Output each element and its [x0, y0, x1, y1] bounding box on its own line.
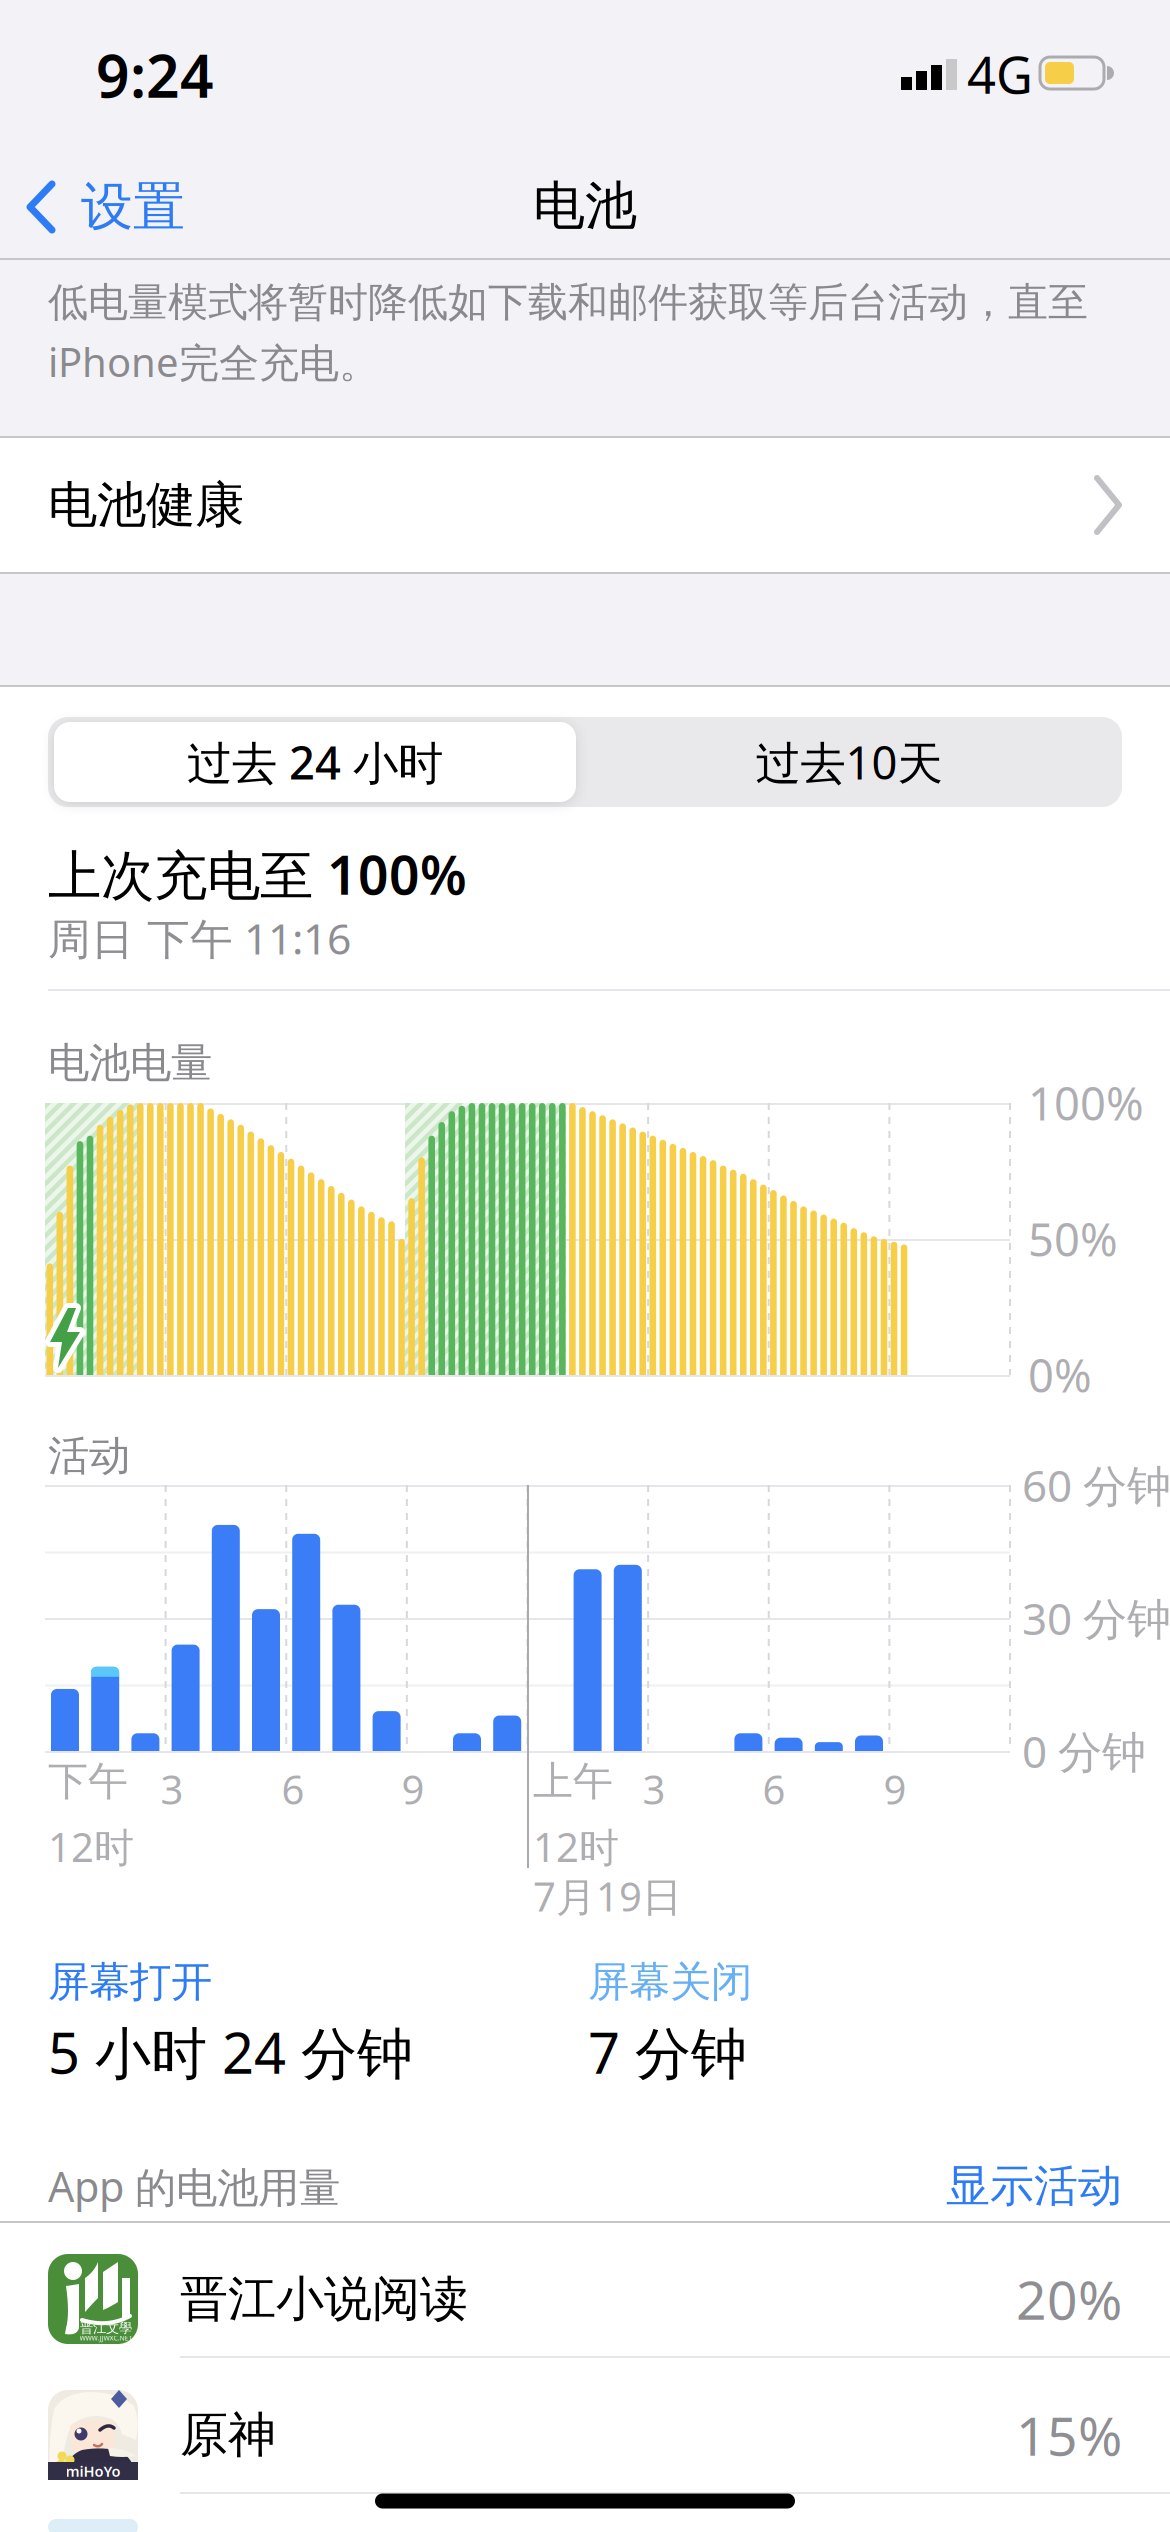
staticText: App 的电池用量: [48, 2158, 340, 2213]
button[interactable]: 晋江文學: [0, 2254, 1170, 2344]
staticText: 周日 下午 11:16: [48, 910, 351, 966]
button[interactable]: 显示活动: [822, 2159, 1122, 2213]
button[interactable]: miHoYo: [0, 2390, 1170, 2480]
staticText: 3: [642, 1762, 665, 1815]
staticText: 15%: [1016, 2400, 1122, 2470]
staticText: 12时: [48, 1820, 134, 1873]
staticText: 显示活动: [946, 2159, 1122, 2213]
staticText: 20%: [1016, 2264, 1122, 2334]
staticText: 过去10天: [755, 732, 942, 792]
staticText: iPhone完全充电。: [48, 335, 379, 388]
staticText: 100%: [1028, 1073, 1144, 1133]
button[interactable]: 过去 24 小时: [54, 722, 576, 802]
staticText: WWW.JJWXC.NET: [79, 2334, 132, 2342]
staticText: 12时: [533, 1820, 619, 1873]
button[interactable]: 电池健康: [0, 438, 1170, 572]
staticText: 屏幕关闭: [588, 1957, 752, 2007]
staticText: 电池健康: [48, 475, 244, 535]
staticText: 电池: [533, 174, 637, 238]
staticText: 7 分钟: [588, 2015, 747, 2089]
staticText: 上午: [533, 1757, 613, 1806]
staticText: 电池电量: [48, 1038, 212, 1088]
staticText: 0%: [1028, 1345, 1092, 1405]
staticText: 6: [762, 1762, 785, 1815]
staticText: 晋江小说阅读: [180, 2269, 468, 2328]
staticText: 9: [401, 1762, 424, 1815]
staticText: 3: [160, 1762, 183, 1815]
staticText: 4G: [967, 40, 1033, 108]
staticText: 晋江文學: [80, 2320, 132, 2336]
staticText: 活动: [48, 1431, 130, 1481]
staticText: 6: [281, 1762, 304, 1815]
staticText: 原神: [180, 2405, 276, 2464]
staticText: 上次充电至 100%: [48, 839, 467, 909]
staticText: 0 分钟: [1022, 1722, 1146, 1780]
staticText: 屏幕打开: [48, 1957, 212, 2007]
button[interactable]: 过去10天: [588, 722, 1110, 802]
staticText: 50%: [1028, 1209, 1118, 1269]
button[interactable]: 设置: [25, 167, 225, 247]
staticText: 5 小时 24 分钟: [48, 2015, 413, 2089]
staticText: 下午: [48, 1757, 128, 1806]
staticText: 9: [883, 1762, 906, 1815]
staticText: 60 分钟: [1022, 1456, 1170, 1514]
staticText: 30 分钟: [1022, 1589, 1170, 1647]
staticText: 设置: [81, 175, 185, 239]
staticText: 过去 24 小时: [187, 732, 443, 792]
staticText: 7月19日: [533, 1869, 682, 1922]
staticText: 9:24: [96, 36, 214, 114]
staticText: miHoYo: [65, 2461, 120, 2481]
staticText: 低电量模式将暂时降低如下载和邮件获取等后台活动，直至: [48, 278, 1088, 327]
